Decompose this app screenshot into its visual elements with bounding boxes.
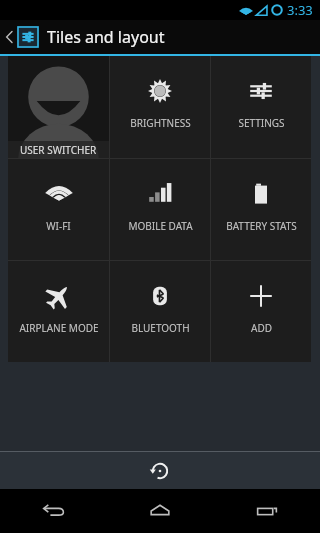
button[interactable]: Back xyxy=(0,489,106,533)
button[interactable]: BLUETOOTH xyxy=(110,261,210,362)
staticText: AIRPLANE MODE xyxy=(19,321,99,335)
button[interactable]: Navigate up xyxy=(0,20,175,54)
button[interactable]: Home xyxy=(106,489,213,533)
button[interactable]: SETTINGS xyxy=(211,56,311,158)
button[interactable]: BRIGHTNESS xyxy=(110,56,210,158)
button[interactable]: BATTERY STATS xyxy=(211,159,311,260)
staticText: BLUETOOTH xyxy=(131,321,190,335)
staticText: USER SWITCHER xyxy=(20,143,97,157)
button[interactable]: WI-FI xyxy=(8,159,109,260)
staticText: WI-FI xyxy=(46,219,71,233)
button[interactable]: Recent apps xyxy=(213,489,320,533)
button[interactable]: USER SWITCHER xyxy=(8,56,109,158)
staticText: BATTERY STATS xyxy=(226,219,297,233)
staticText: SETTINGS xyxy=(238,116,285,130)
staticText: 3:33 xyxy=(287,1,313,19)
other: Navigate up xyxy=(5,30,14,44)
button[interactable]: ADD xyxy=(211,261,311,362)
staticText: MOBILE DATA xyxy=(128,219,193,233)
button[interactable]: MOBILE DATA xyxy=(110,159,210,260)
button[interactable]: Reset tiles xyxy=(140,452,180,489)
button[interactable]: AIRPLANE MODE xyxy=(8,261,109,362)
staticText: Tiles and layout xyxy=(47,26,165,48)
staticText: BRIGHTNESS xyxy=(130,116,191,130)
staticText: ADD xyxy=(251,321,272,335)
